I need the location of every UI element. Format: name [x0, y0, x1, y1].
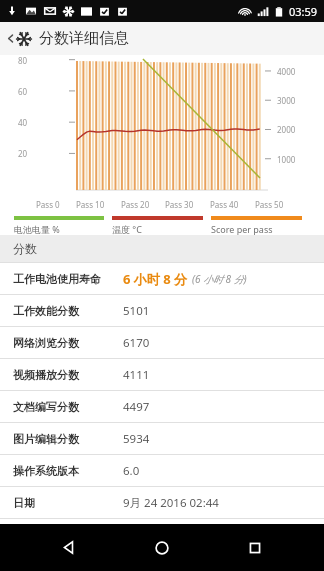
button[interactable]: Back: [45, 524, 93, 571]
staticText: 工作电池使用寿命: [13, 272, 123, 286]
staticText: Pass 40: [210, 199, 239, 210]
staticText: 20: [18, 148, 28, 159]
staticText: 图片编辑分数: [13, 432, 123, 446]
staticText: Score per pass: [211, 223, 273, 235]
staticText: Pass 50: [255, 199, 284, 210]
staticText: Pass 20: [121, 199, 150, 210]
button[interactable]: 文档编写分数: [0, 391, 324, 422]
button[interactable]: Back: [108, 524, 216, 571]
button[interactable]: 工作电池使用寿命: [0, 263, 324, 294]
staticText: 1000: [277, 154, 296, 165]
button[interactable]: 网络浏览分数: [0, 327, 324, 358]
staticText: 4497: [123, 399, 150, 415]
button[interactable]: 工作效能分数: [0, 295, 324, 326]
button[interactable]: 图片编辑分数: [0, 423, 324, 454]
button[interactable]: 操作系统版本: [0, 455, 324, 486]
staticText: 视频播放分数: [13, 368, 123, 382]
staticText: 9月 24 2016 02:44: [123, 495, 219, 511]
staticText: 40: [18, 117, 28, 128]
staticText: 2000: [277, 124, 296, 135]
button[interactable]: Back: [4, 22, 16, 55]
staticText: 网络浏览分数: [13, 336, 123, 350]
staticText: 4111: [123, 367, 150, 383]
staticText: 文档编写分数: [13, 400, 123, 414]
staticText: 6 小时 8 分: [123, 270, 188, 288]
staticText: Pass 30: [165, 199, 194, 210]
staticText: 5101: [123, 303, 150, 319]
staticText: 3000: [277, 95, 296, 106]
staticText: 5934: [123, 431, 150, 447]
staticText: 分数: [13, 241, 37, 256]
staticText: 6.0: [123, 463, 140, 479]
staticText: 60: [18, 86, 28, 97]
button[interactable]: Recents: [231, 524, 279, 571]
staticText: (6 小时 8 分): [192, 272, 247, 286]
staticText: Pass 10: [76, 199, 105, 210]
staticText: 03:59: [289, 4, 318, 19]
staticText: 分数详细信息: [39, 29, 129, 48]
staticText: 操作系统版本: [13, 464, 123, 478]
button[interactable]: 日期: [0, 487, 324, 518]
staticText: 80: [18, 55, 28, 66]
staticText: 6170: [123, 335, 150, 351]
staticText: Pass 0: [36, 199, 60, 210]
staticText: 工作效能分数: [13, 304, 123, 318]
button[interactable]: 视频播放分数: [0, 359, 324, 390]
staticText: 温度 °C: [112, 223, 142, 235]
staticText: 日期: [13, 496, 123, 510]
staticText: 4000: [277, 66, 296, 77]
button[interactable]: Back: [0, 22, 324, 55]
staticText: 电池电量 %: [14, 223, 60, 235]
button[interactable]: Home: [138, 524, 186, 571]
